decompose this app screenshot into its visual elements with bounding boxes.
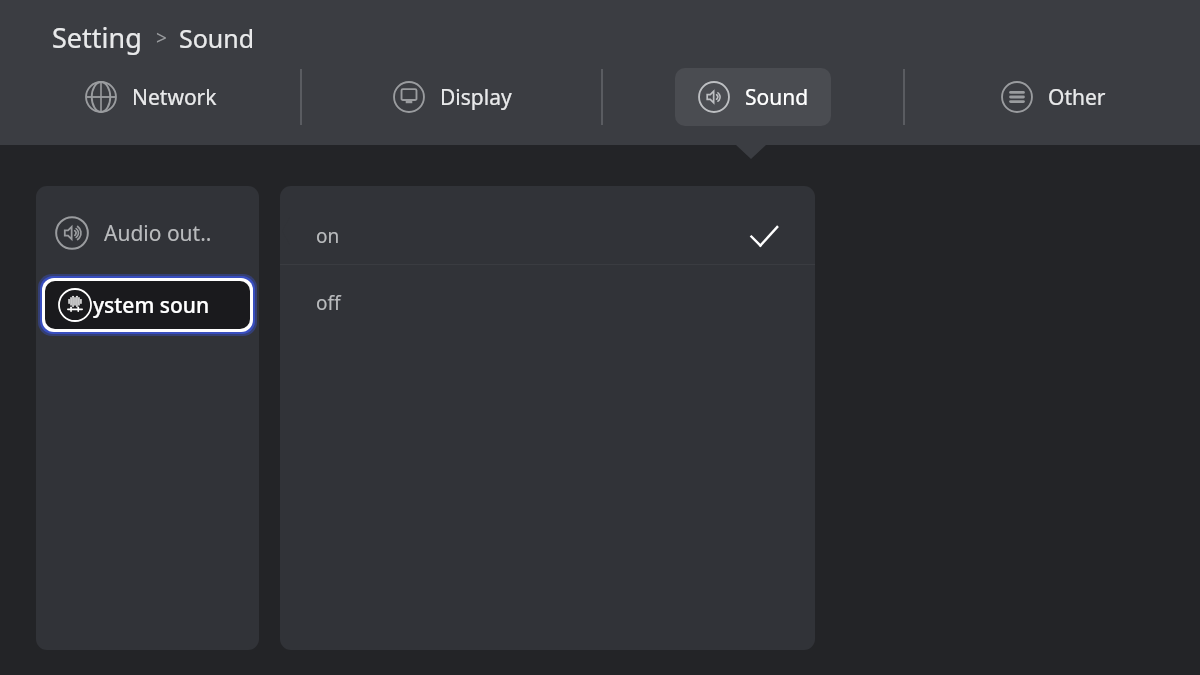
staticText: off [316,290,341,316]
staticText: Sound [745,83,809,112]
button[interactable]: Audio out.. [36,197,259,269]
staticText: Sound [179,21,255,55]
staticText: on [316,223,340,249]
staticText: > [156,25,167,51]
button[interactable]: Sound [675,68,831,126]
button[interactable]: Display [382,68,522,126]
button[interactable]: ystem soun [42,278,253,332]
staticText: Display [440,83,512,112]
staticText: ystem soun [93,291,210,320]
staticText: Setting [52,19,142,56]
button[interactable]: Other [990,68,1116,126]
staticText: Audio out.. [104,219,212,248]
staticText: Network [132,83,217,112]
button[interactable]: on [280,207,815,264]
other: Selected [749,221,779,251]
button[interactable]: Network [74,68,227,126]
button[interactable]: off [280,265,815,341]
staticText: Other [1048,83,1106,112]
